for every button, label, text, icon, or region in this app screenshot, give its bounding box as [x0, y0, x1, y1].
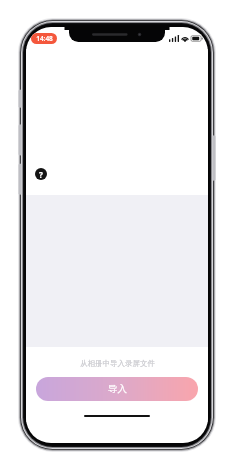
- staticText: ?: [39, 169, 43, 180]
- staticText: 从相册中导入录屏文件: [80, 359, 155, 368]
- button[interactable]: 导入: [36, 377, 198, 401]
- staticText: 14:48: [36, 34, 53, 43]
- staticText: 导入: [108, 383, 127, 395]
- button[interactable]: Help: [32, 165, 50, 183]
